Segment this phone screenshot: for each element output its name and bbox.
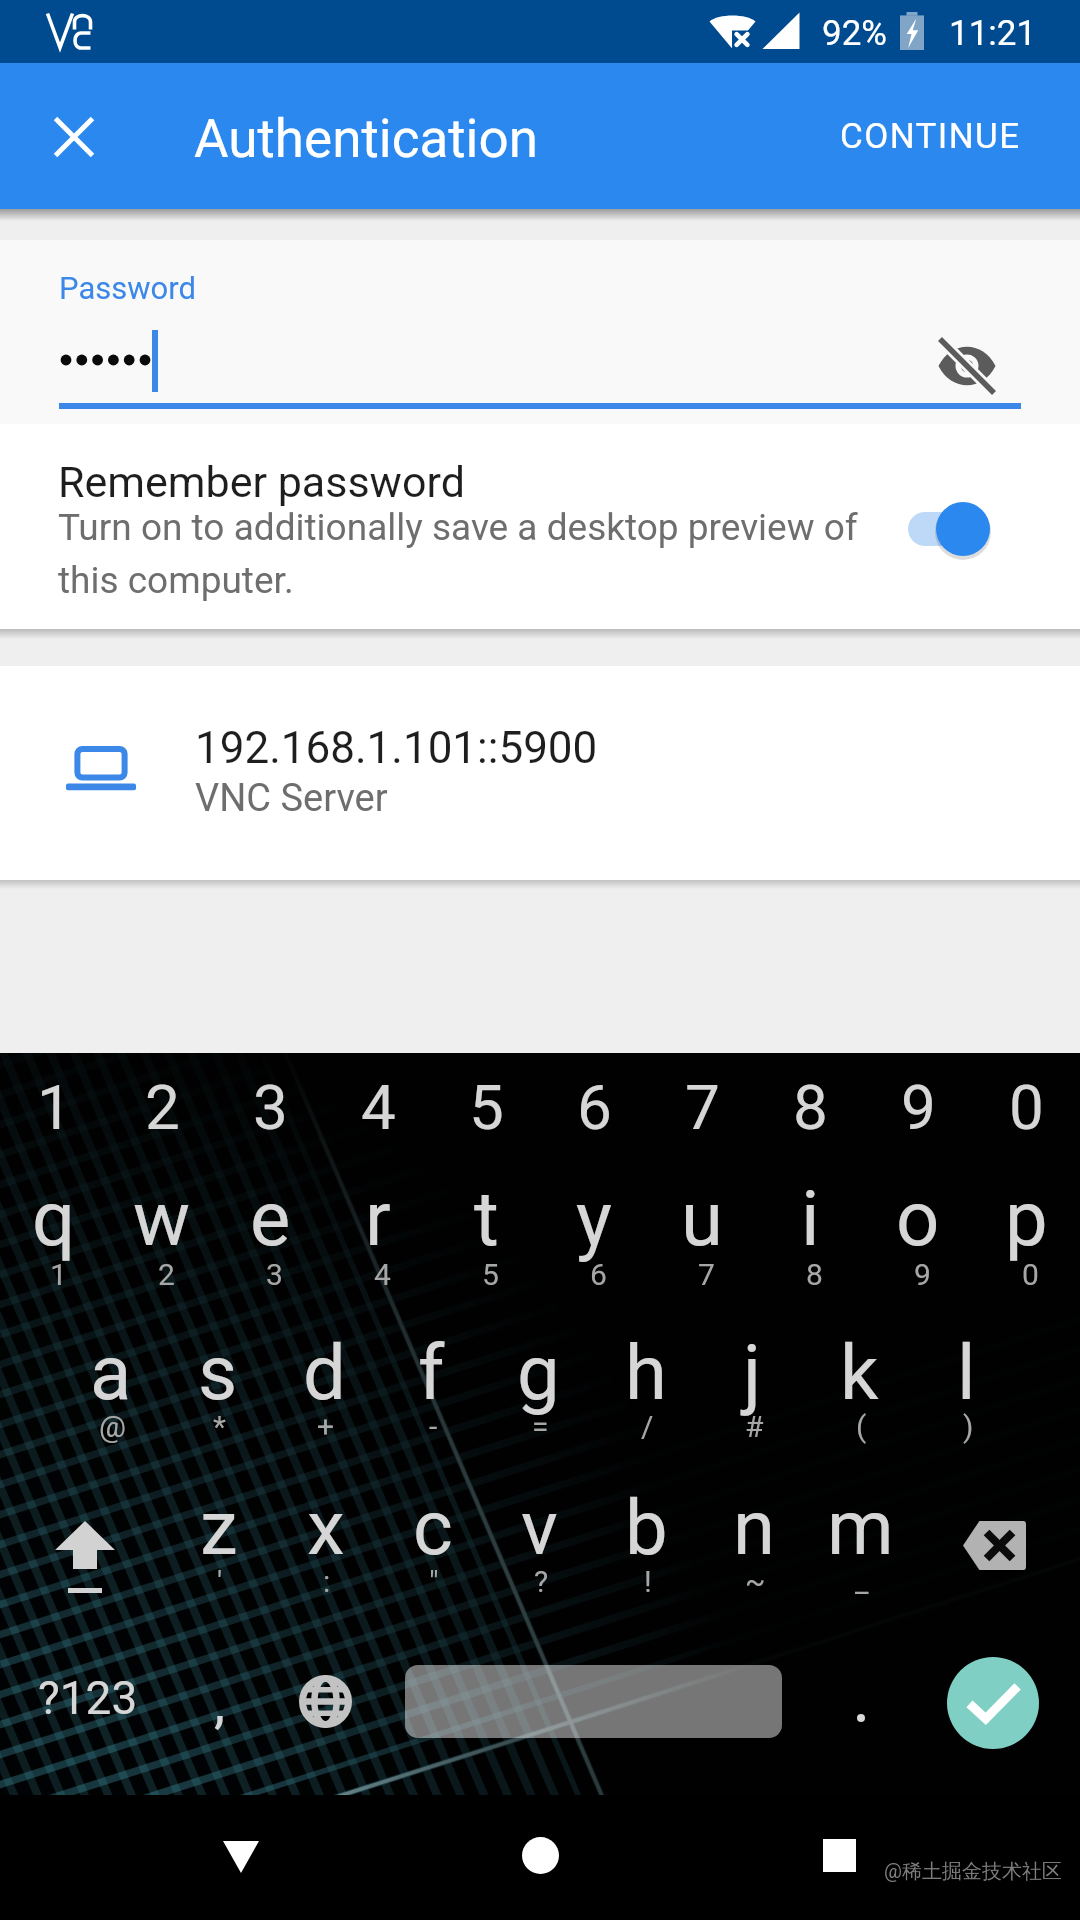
button[interactable]: s: [164, 1328, 271, 1433]
staticText: j: [743, 1328, 762, 1417]
button[interactable]: ?: [501, 1564, 581, 1604]
button[interactable]: d: [271, 1328, 378, 1433]
staticText: l: [957, 1328, 976, 1417]
button[interactable]: z: [165, 1483, 272, 1588]
button[interactable]: !: [608, 1564, 688, 1604]
staticText: v: [521, 1483, 558, 1572]
button[interactable]: p: [972, 1174, 1080, 1279]
button[interactable]: b: [593, 1483, 700, 1588]
button[interactable]: 3: [234, 1257, 314, 1297]
staticText: 2: [158, 1257, 175, 1292]
button[interactable]: w: [108, 1174, 216, 1279]
button[interactable]: 6: [558, 1257, 638, 1297]
button[interactable]: Change keyboard language: [268, 1650, 382, 1780]
button[interactable]: n: [700, 1483, 807, 1588]
button[interactable]: h: [592, 1328, 699, 1433]
button[interactable]: c: [379, 1483, 486, 1588]
staticText: k: [840, 1328, 879, 1417]
button[interactable]: 6: [540, 1071, 648, 1161]
button[interactable]: Close: [26, 89, 122, 185]
button[interactable]: 2: [108, 1071, 216, 1161]
button[interactable]: l: [913, 1328, 1020, 1433]
button[interactable]: e: [216, 1174, 324, 1279]
staticText: 3: [253, 1071, 288, 1144]
staticText: u: [681, 1174, 723, 1263]
button[interactable]: x: [272, 1483, 379, 1588]
button[interactable]: 5: [450, 1257, 530, 1297]
button[interactable]: m: [807, 1483, 914, 1588]
button[interactable]: ': [180, 1564, 260, 1604]
button[interactable]: Remember password: [0, 424, 1080, 629]
button[interactable]: u: [648, 1174, 756, 1279]
staticText: q: [32, 1174, 76, 1263]
button[interactable]: ,: [165, 1670, 275, 1790]
button[interactable]: 4: [324, 1071, 432, 1161]
staticText: @稀土掘金技术社区: [884, 1859, 1062, 1884]
staticText: d: [303, 1328, 346, 1417]
button[interactable]: (: [821, 1409, 901, 1449]
button[interactable]: 5: [432, 1071, 540, 1161]
button[interactable]: ~: [715, 1564, 795, 1604]
staticText: f: [418, 1328, 445, 1417]
button[interactable]: 8: [774, 1257, 854, 1297]
button[interactable]: -: [393, 1409, 473, 1449]
button[interactable]: @: [72, 1409, 152, 1449]
button[interactable]: =: [500, 1409, 580, 1449]
staticText: y: [576, 1174, 612, 1263]
button[interactable]: 4: [342, 1257, 422, 1297]
button[interactable]: 2: [126, 1257, 206, 1297]
button[interactable]: _: [822, 1564, 902, 1604]
staticText: e: [250, 1174, 291, 1263]
button[interactable]: Home: [480, 1795, 600, 1905]
button[interactable]: Space: [390, 1633, 800, 1773]
button[interactable]: 9: [864, 1071, 972, 1161]
button[interactable]: 7: [666, 1257, 746, 1297]
button[interactable]: 9: [882, 1257, 962, 1297]
button[interactable]: i: [756, 1174, 864, 1279]
button[interactable]: r: [324, 1174, 432, 1279]
button[interactable]: 7: [648, 1071, 756, 1161]
button[interactable]: a: [57, 1328, 164, 1433]
staticText: 4: [374, 1257, 391, 1292]
button[interactable]: 192.168.1.101::5900: [0, 666, 1080, 880]
button[interactable]: 3: [216, 1071, 324, 1161]
button[interactable]: Back: [181, 1795, 301, 1905]
button[interactable]: *: [179, 1409, 259, 1449]
button[interactable]: y: [540, 1174, 648, 1279]
button[interactable]: Shift: [4, 1493, 164, 1613]
button[interactable]: q: [0, 1174, 108, 1279]
button[interactable]: k: [806, 1328, 913, 1433]
button[interactable]: Recent apps: [779, 1795, 899, 1905]
staticText: 0: [1022, 1257, 1039, 1292]
staticText: a: [90, 1328, 132, 1417]
button[interactable]: 1: [0, 1071, 108, 1161]
button[interactable]: Done: [917, 1627, 1069, 1779]
button[interactable]: ): [928, 1409, 1008, 1449]
button[interactable]: 0: [972, 1071, 1080, 1161]
staticText: 192.168.1.101::5900: [195, 722, 598, 774]
button[interactable]: Show password: [920, 320, 1016, 408]
button[interactable]: /: [607, 1409, 687, 1449]
button[interactable]: ": [394, 1564, 474, 1604]
button[interactable]: ?123: [0, 1633, 176, 1763]
staticText: (: [856, 1409, 867, 1444]
button[interactable]: f: [378, 1328, 485, 1433]
button[interactable]: Backspace: [930, 1493, 1070, 1613]
button[interactable]: CONTINUE: [810, 63, 1050, 209]
staticText: b: [625, 1483, 668, 1572]
button[interactable]: :: [287, 1564, 367, 1604]
staticText: !: [644, 1564, 652, 1599]
button[interactable]: g: [485, 1328, 592, 1433]
button[interactable]: #: [714, 1409, 794, 1449]
button[interactable]: 8: [756, 1071, 864, 1161]
button[interactable]: +: [286, 1409, 366, 1449]
button[interactable]: j: [699, 1328, 806, 1433]
button[interactable]: v: [486, 1483, 593, 1588]
button[interactable]: [808, 1645, 913, 1775]
staticText: 3: [266, 1257, 283, 1292]
button[interactable]: 1: [18, 1257, 98, 1297]
button[interactable]: o: [864, 1174, 972, 1279]
button[interactable]: 0: [990, 1257, 1070, 1297]
staticText: 11:21: [949, 13, 1037, 54]
button[interactable]: t: [432, 1174, 540, 1279]
